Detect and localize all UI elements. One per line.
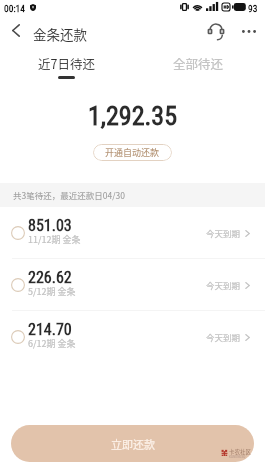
staticText: 00:14 xyxy=(4,3,25,14)
button[interactable]: 近7日待还 xyxy=(0,51,132,85)
staticText: 近7日待还 xyxy=(38,54,95,72)
button[interactable]: 立即还款 xyxy=(11,425,254,462)
button[interactable]: Customer service xyxy=(203,18,229,44)
staticText: 226.62 xyxy=(28,268,72,287)
button[interactable]: 开通自动还款 xyxy=(93,144,172,161)
staticText: 851.03 xyxy=(28,216,72,235)
staticText: 立即还款 xyxy=(111,436,155,452)
button[interactable]: 851.03 xyxy=(0,207,265,259)
button[interactable]: Back xyxy=(2,17,29,44)
staticText: 全部待还 xyxy=(173,54,224,72)
staticText: 11/12期 金条 xyxy=(28,233,81,246)
button[interactable]: 226.62 xyxy=(0,259,265,311)
staticText: 今天到期 xyxy=(206,331,241,343)
button[interactable]: 全部待还 xyxy=(132,51,265,85)
staticText: 卡农社区 xyxy=(229,448,251,456)
staticText: 今天到期 xyxy=(206,227,241,239)
staticText: KANONGSQ xyxy=(229,455,246,459)
staticText: 6/12期 金条 xyxy=(28,337,76,350)
staticText: 214.70 xyxy=(28,320,72,339)
staticText: 93 xyxy=(248,3,258,14)
staticText: 1,292.35 xyxy=(0,101,265,131)
staticText: 金条还款 xyxy=(33,24,87,44)
button[interactable]: More options xyxy=(236,18,262,44)
staticText: 共3笔待还，最近还款日04/30 xyxy=(13,189,125,201)
staticText: 开通自动还款 xyxy=(105,146,160,159)
button[interactable]: 214.70 xyxy=(0,311,265,363)
staticText: 今天到期 xyxy=(206,279,241,291)
staticText: 5/12期 金条 xyxy=(28,285,76,298)
